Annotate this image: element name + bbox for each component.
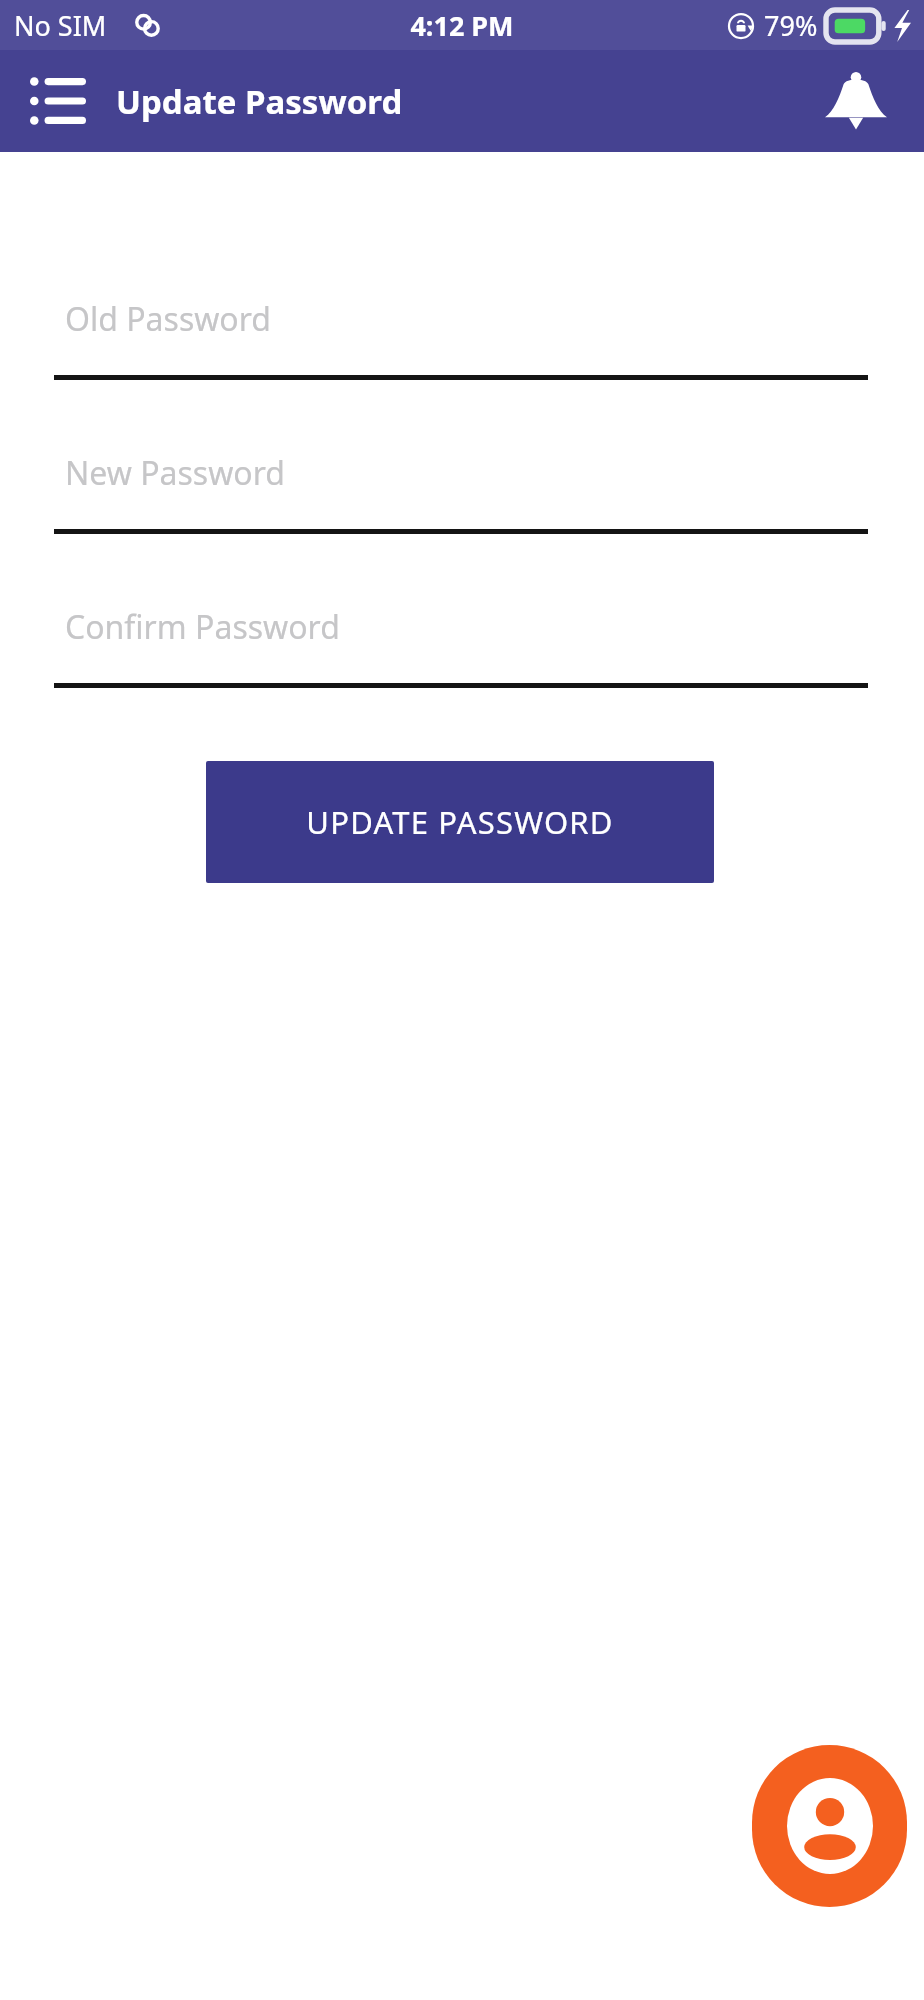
button[interactable]: UPDATE PASSWORD [206, 761, 714, 883]
staticText: 4:12 PM [410, 7, 514, 44]
button[interactable]: Open navigation menu [18, 61, 98, 141]
staticText: Confirm Password [65, 605, 340, 649]
staticText: UPDATE PASSWORD [306, 801, 614, 843]
button[interactable]: Profile [752, 1745, 907, 1907]
button[interactable]: New Password [54, 436, 868, 510]
button[interactable]: Notifications [814, 59, 898, 143]
staticText: Update Password [116, 79, 403, 124]
staticText: No SIM [14, 7, 107, 44]
button[interactable]: Old Password [54, 282, 868, 356]
button[interactable]: Confirm Password [54, 590, 868, 664]
staticText: New Password [65, 451, 285, 495]
staticText: Old Password [65, 297, 271, 341]
staticText: 79% [764, 7, 818, 44]
